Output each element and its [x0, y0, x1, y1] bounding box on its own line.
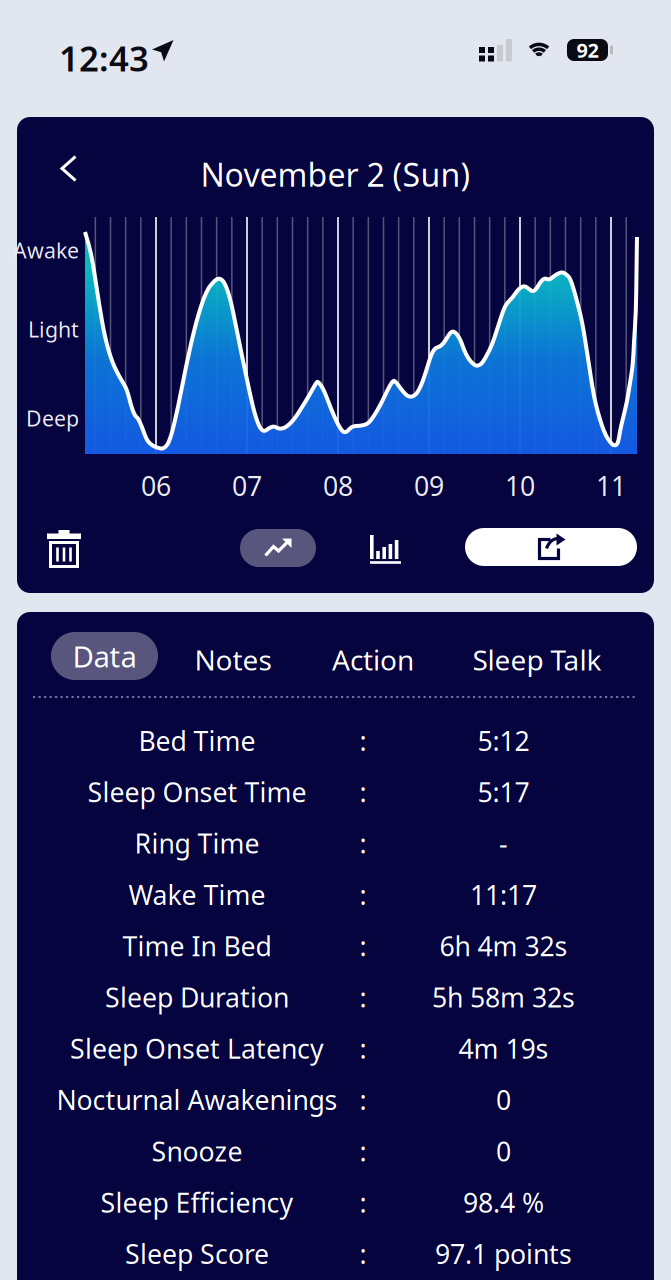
staticText: 11:17: [470, 877, 537, 912]
staticText: Data: [72, 636, 136, 675]
button[interactable]: Action: [308, 641, 438, 678]
staticText: Sleep Score: [125, 1236, 269, 1271]
staticText: :: [359, 723, 366, 758]
staticText: 10: [505, 468, 535, 503]
button[interactable]: [370, 533, 402, 564]
button[interactable]: Data: [51, 632, 158, 680]
staticText: Nocturnal Awakenings: [56, 1082, 337, 1117]
staticText: :: [359, 1185, 366, 1220]
staticText: 07: [232, 468, 262, 503]
staticText: 92: [576, 37, 598, 63]
staticText: 0: [496, 1133, 511, 1169]
staticText: 5:17: [477, 774, 529, 810]
staticText: 06: [141, 468, 171, 503]
staticText: Deep: [26, 404, 79, 432]
staticText: 4m 19s: [458, 1031, 548, 1066]
button[interactable]: Sleep Talk: [457, 641, 617, 678]
staticText: :: [359, 825, 366, 861]
staticText: Action: [332, 641, 414, 678]
staticText: 97.1 points: [435, 1236, 572, 1271]
staticText: 98.4 %: [463, 1185, 544, 1220]
staticText: Sleep Duration: [105, 979, 289, 1015]
staticText: :: [359, 1082, 366, 1117]
button[interactable]: [60, 155, 77, 182]
staticText: Bed Time: [138, 723, 255, 758]
staticText: 08: [323, 468, 353, 503]
staticText: 12:43: [59, 35, 149, 81]
staticText: :: [359, 1133, 366, 1169]
button[interactable]: [465, 528, 637, 566]
staticText: 5:12: [477, 723, 529, 758]
staticText: :: [359, 979, 366, 1015]
button[interactable]: Notes: [168, 641, 298, 678]
staticText: Sleep Talk: [472, 641, 601, 678]
staticText: :: [359, 774, 366, 810]
staticText: 09: [414, 468, 444, 503]
staticText: Ring Time: [134, 825, 259, 861]
staticText: :: [359, 928, 366, 963]
staticText: 11: [596, 468, 626, 503]
staticText: 0: [496, 1082, 511, 1117]
staticText: :: [359, 1031, 366, 1066]
staticText: 5h 58m 32s: [432, 979, 575, 1015]
staticText: Light: [28, 315, 79, 343]
staticText: -: [499, 825, 508, 861]
staticText: November 2 (Sun): [200, 153, 470, 195]
staticText: Snooze: [151, 1133, 242, 1169]
button[interactable]: [46, 530, 82, 568]
staticText: Sleep Onset Time: [87, 774, 306, 810]
staticText: :: [359, 877, 366, 912]
button[interactable]: [240, 529, 316, 567]
staticText: Sleep Efficiency: [100, 1185, 293, 1220]
staticText: Time In Bed: [122, 928, 271, 963]
staticText: Sleep Onset Latency: [70, 1031, 324, 1066]
staticText: 6h 4m 32s: [439, 928, 567, 963]
staticText: Notes: [194, 641, 271, 678]
staticText: Wake Time: [128, 877, 265, 912]
staticText: :: [359, 1236, 366, 1271]
staticText: Awake: [13, 236, 79, 264]
